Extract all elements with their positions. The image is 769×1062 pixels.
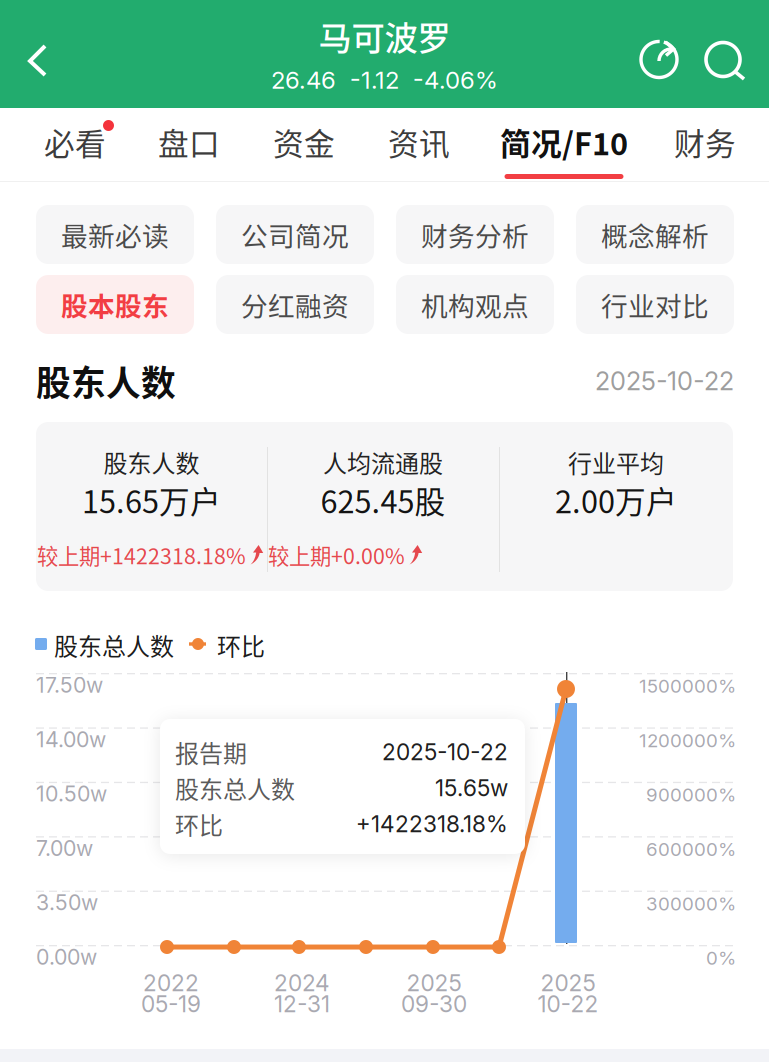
- button[interactable]: Search: [692, 28, 756, 92]
- staticText: 财务分析: [421, 215, 529, 254]
- staticText: 15.65万户: [82, 478, 221, 522]
- staticText: 2024: [274, 969, 330, 997]
- staticText: 资金: [273, 120, 335, 164]
- staticText: 公司简况: [241, 215, 349, 254]
- staticText: 09-30: [401, 990, 467, 1018]
- staticText: 盘口: [158, 120, 220, 164]
- staticText: 资讯: [388, 120, 450, 164]
- staticText: 行业对比: [601, 285, 709, 324]
- staticText: 2.00万户: [555, 478, 677, 522]
- staticText: 600000%: [646, 838, 736, 860]
- button[interactable]: 股本股东: [36, 275, 194, 334]
- button[interactable]: 财务: [655, 108, 755, 182]
- staticText: 简况/F10: [500, 120, 628, 164]
- staticText: 2025-10-22: [382, 738, 508, 766]
- button[interactable]: 资金: [254, 108, 354, 182]
- staticText: 10-22: [537, 990, 598, 1018]
- staticText: 05-19: [141, 990, 201, 1018]
- staticText: 概念解析: [601, 215, 709, 254]
- staticText: 12-31: [274, 990, 330, 1018]
- staticText: 财务: [674, 120, 736, 164]
- staticText: 较上期+1422318.18%: [37, 540, 246, 570]
- button[interactable]: 行业对比: [576, 275, 734, 334]
- button[interactable]: 概念解析: [576, 205, 734, 264]
- button[interactable]: 财务分析: [396, 205, 554, 264]
- staticText: 2025: [406, 969, 461, 997]
- button[interactable]: 公司简况: [216, 205, 374, 264]
- staticText: 26.46 -1.12 -4.06%: [271, 65, 498, 94]
- staticText: 0.00w: [36, 944, 97, 970]
- button[interactable]: 必看: [25, 108, 125, 182]
- button[interactable]: 资讯: [369, 108, 469, 182]
- staticText: 300000%: [646, 892, 736, 915]
- staticText: 环比: [175, 807, 223, 841]
- staticText: 环比: [217, 628, 265, 662]
- button[interactable]: Refresh: [627, 28, 691, 92]
- button[interactable]: Back: [0, 0, 76, 108]
- button[interactable]: 盘口: [139, 108, 239, 182]
- button[interactable]: 机构观点: [396, 275, 554, 334]
- staticText: 625.45股: [320, 478, 445, 522]
- staticText: 10.50w: [36, 781, 107, 807]
- staticText: 0%: [706, 947, 736, 969]
- button[interactable]: 分红融资: [216, 275, 374, 334]
- staticText: 15.65w: [435, 774, 508, 802]
- staticText: +1422318.18%: [356, 810, 508, 838]
- staticText: 较上期+0.00%: [268, 540, 405, 570]
- staticText: 行业平均: [568, 445, 664, 479]
- button[interactable]: 简况/F10: [491, 108, 636, 182]
- button[interactable]: 最新必读: [36, 205, 194, 264]
- staticText: 2025: [540, 969, 595, 997]
- staticText: 3.50w: [36, 890, 98, 915]
- staticText: 1500000%: [639, 675, 736, 697]
- staticText: 最新必读: [61, 215, 169, 254]
- staticText: 17.50w: [36, 672, 103, 698]
- staticText: 股东总人数: [175, 771, 295, 805]
- staticText: 14.00w: [36, 726, 106, 752]
- staticText: 2025-10-22: [595, 366, 734, 396]
- staticText: 1200000%: [639, 729, 736, 752]
- staticText: 报告期: [175, 735, 247, 769]
- staticText: 股东人数: [36, 356, 176, 406]
- staticText: 分红融资: [241, 285, 349, 324]
- staticText: 机构观点: [421, 285, 529, 324]
- staticText: 7.00w: [36, 835, 93, 861]
- staticText: 人均流通股: [323, 445, 443, 479]
- staticText: 股东总人数: [54, 628, 174, 662]
- staticText: 马可波罗: [318, 12, 450, 60]
- staticText: 2022: [143, 969, 199, 997]
- staticText: 900000%: [646, 783, 736, 806]
- staticText: 股本股东: [61, 285, 169, 324]
- staticText: 股东人数: [103, 445, 199, 479]
- staticText: 必看: [44, 120, 106, 164]
